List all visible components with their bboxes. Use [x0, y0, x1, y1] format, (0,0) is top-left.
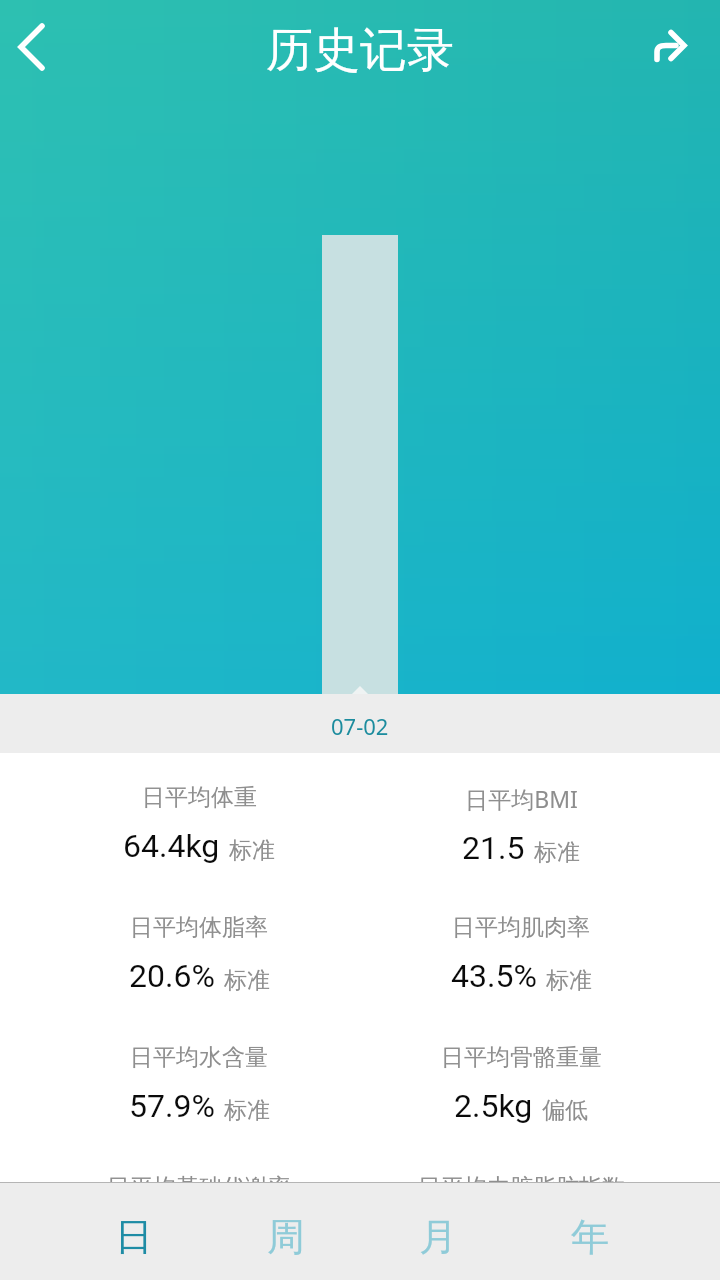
staticText: 2.5kg [454, 1087, 533, 1125]
staticText: 历史记录 [266, 21, 454, 80]
button[interactable]: 年 [514, 1193, 666, 1280]
staticText: 日平均肌肉率 [452, 913, 590, 942]
staticText: 标准 [534, 838, 580, 867]
button[interactable]: Back [0, 0, 70, 70]
staticText: 标准 [546, 966, 592, 995]
button[interactable]: 月 [362, 1193, 514, 1280]
staticText: 年 [571, 1213, 609, 1261]
staticText: 标准 [224, 1096, 270, 1125]
staticText: 月 [419, 1213, 457, 1261]
staticText: 日 [115, 1213, 153, 1261]
button[interactable]: Share [624, 0, 720, 96]
staticText: 57.9% [129, 1087, 215, 1125]
staticText: 1302kcal [107, 1217, 237, 1255]
staticText: 21.5 [462, 829, 525, 867]
staticText: 日平均体脂率 [130, 913, 268, 942]
staticText: 标准 [224, 966, 270, 995]
staticText: 07-02 [331, 711, 389, 741]
staticText: 标准 [229, 836, 275, 865]
staticText: 日平均BMI [465, 783, 578, 814]
staticText: 日平均体重 [142, 783, 257, 812]
staticText: 日平均骨骼重量 [441, 1043, 602, 1072]
button[interactable]: 周 [210, 1193, 362, 1280]
staticText: 日平均内脏脂肪指数 [418, 1173, 625, 1202]
staticText: 日平均基础代谢率 [107, 1173, 291, 1202]
staticText: 标准 [246, 1226, 292, 1255]
staticText: 周 [267, 1213, 305, 1261]
staticText: 20.6% [129, 957, 215, 995]
staticText: 日平均水含量 [130, 1043, 268, 1072]
staticText: 43.5% [451, 957, 537, 995]
staticText: 偏低 [542, 1096, 588, 1125]
button[interactable]: 日 [58, 1193, 210, 1280]
staticText: 64.4kg [123, 827, 220, 865]
